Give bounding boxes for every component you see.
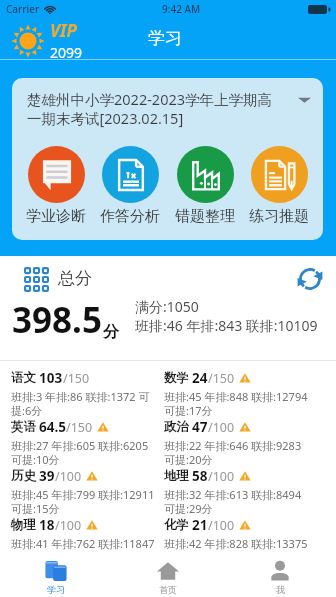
staticText: Carrier (6, 2, 40, 16)
staticText: 总分 (58, 268, 92, 289)
staticText: 地理 (164, 468, 189, 484)
staticText: /100 (208, 517, 235, 534)
staticText: 政治 (164, 419, 189, 435)
button[interactable]: 作答分析 (100, 146, 160, 226)
button[interactable]: 政治 (164, 418, 316, 468)
button[interactable]: VIP (11, 19, 83, 62)
staticText: 18 (39, 516, 55, 534)
button[interactable]: 错题整理 (175, 146, 235, 226)
staticText: 39 (39, 467, 55, 485)
staticText: /100 (55, 517, 82, 534)
staticText: 班排:22 年排:646 联排:9283 可提:20分 (164, 438, 308, 468)
staticText: 数学 (164, 370, 189, 386)
staticText: 398.5 (12, 296, 102, 344)
staticText: 64.5 (39, 418, 66, 436)
staticText: VIP (50, 19, 77, 42)
staticText: 班排:27 年排:605 联排:6205 可提:10分 (11, 438, 155, 468)
staticText: 英语 (11, 419, 36, 435)
staticText: /100 (208, 468, 235, 485)
button[interactable]: 练习推题 (249, 146, 309, 226)
button[interactable]: 学业诊断 (26, 146, 86, 226)
staticText: 班排:3 年排:86 联排:1372 可提:6分 (11, 389, 155, 419)
button[interactable]: 地理 (164, 467, 316, 517)
staticText: /150 (208, 370, 235, 387)
staticText: 首页 (159, 584, 177, 595)
staticText: 班排:46 年排:843 联排:10109 (135, 316, 318, 335)
button[interactable]: 学习 (0, 554, 112, 595)
staticText: 历史 (11, 468, 36, 484)
staticText: 班排:41 年排:762 联排:11847 可提:8分 (11, 536, 155, 566)
staticText: 103 (39, 369, 63, 387)
button[interactable]: Refresh (296, 265, 324, 293)
button[interactable]: 语文 (11, 369, 163, 419)
staticText: 9:42 AM (162, 2, 201, 16)
staticText: /100 (208, 419, 235, 436)
staticText: 化学 (164, 517, 189, 533)
staticText: 作答分析 (100, 207, 160, 226)
staticText: 语文 (11, 370, 36, 386)
staticText: 满分:1050 (135, 297, 199, 316)
staticText: 班排:45 年排:848 联排:12794 可提:17分 (164, 389, 308, 419)
staticText: 学业诊断 (26, 207, 86, 226)
button[interactable]: 楚雄州中小学2022-2023学年上学期高一期末考试[2023.02.15] (27, 89, 311, 129)
button[interactable]: 首页 (112, 554, 224, 595)
staticText: 24 (192, 369, 208, 387)
staticText: 班排:42 年排:828 联排:13375 可提:11分 (164, 536, 308, 566)
button[interactable]: 物理 (11, 516, 163, 566)
staticText: 班排:32 年排:613 联排:8494 可提:29分 (164, 487, 308, 517)
staticText: 练习推题 (249, 207, 309, 226)
staticText: 楚雄州中小学2022-2023学年上学期高一期末考试[2023.02.15] (27, 89, 277, 129)
staticText: 2099 (50, 43, 83, 62)
button[interactable]: 化学 (164, 516, 316, 566)
button[interactable]: 我 (224, 554, 336, 595)
staticText: /150 (66, 419, 93, 436)
staticText: 21 (192, 516, 208, 534)
staticText: 学习 (47, 584, 65, 595)
staticText: 班排:45 年排:799 联排:12911 可提:15分 (11, 487, 155, 517)
staticText: 分 (103, 322, 119, 342)
staticText: /150 (63, 370, 90, 387)
staticText: 错题整理 (175, 207, 235, 226)
button[interactable]: 历史 (11, 467, 163, 517)
button[interactable]: 数学 (164, 369, 316, 419)
staticText: 47 (192, 418, 208, 436)
staticText: 我 (276, 584, 285, 595)
staticText: 物理 (11, 517, 36, 533)
staticText: /100 (55, 468, 82, 485)
staticText: 学习 (148, 28, 182, 49)
staticText: 58 (192, 467, 208, 485)
button[interactable]: 英语 (11, 418, 163, 468)
